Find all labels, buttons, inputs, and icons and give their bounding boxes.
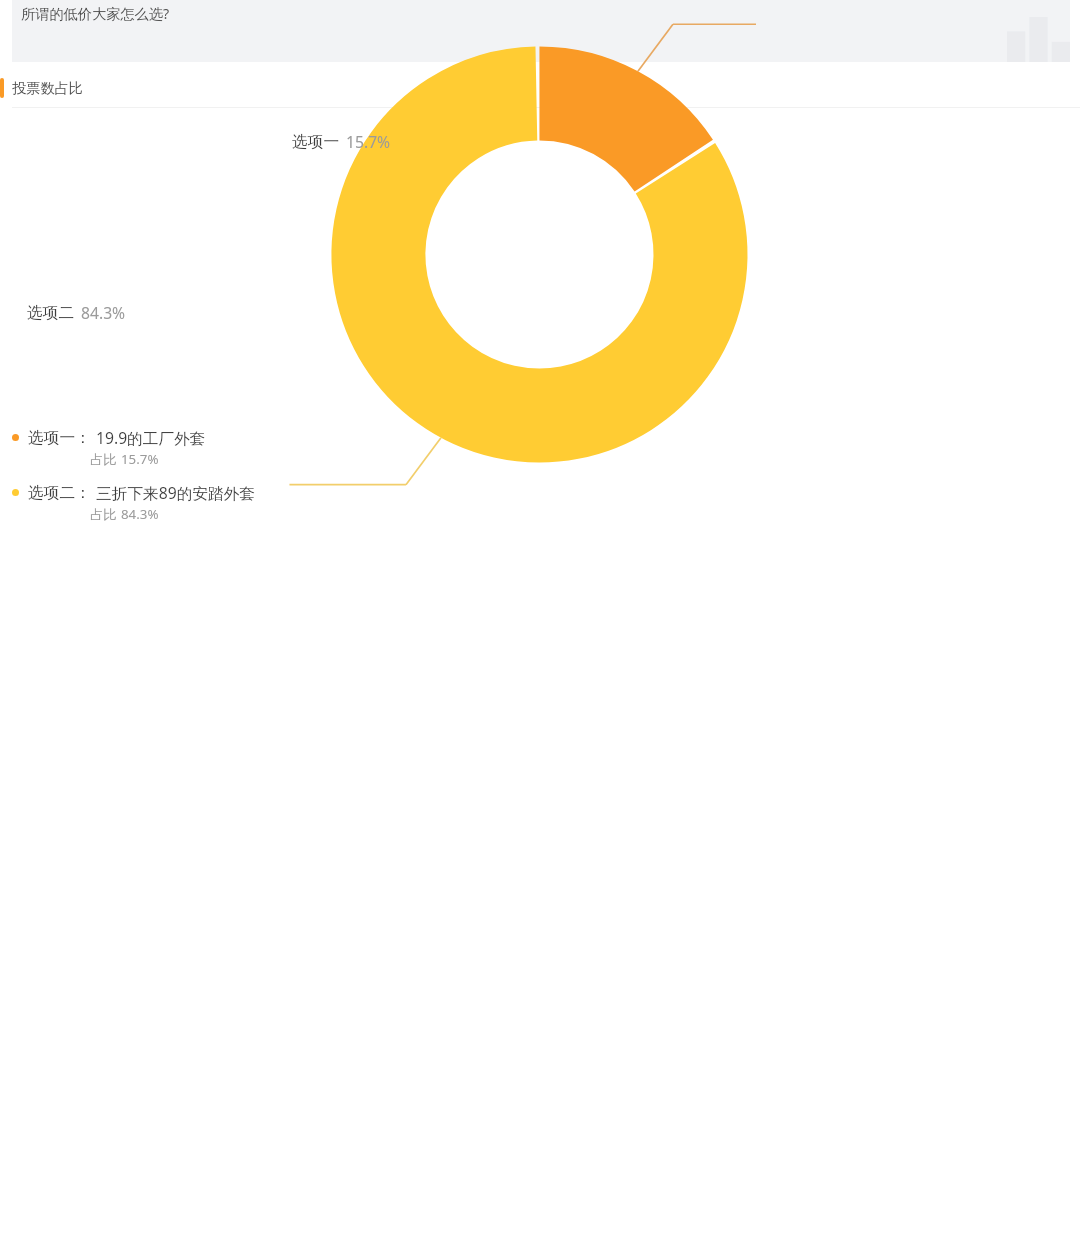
staticText: 15.7% <box>121 450 159 468</box>
staticText: 15.7% <box>346 131 391 152</box>
button[interactable]: 所谓的低价大家怎么选? <box>12 0 1070 62</box>
button[interactable]: 选项一： <box>0 427 1080 468</box>
button[interactable]: 投票数占比 <box>0 78 1080 98</box>
button[interactable]: 选项二： <box>0 482 1080 523</box>
staticText: 占比 <box>90 450 121 468</box>
staticText: 选项一 <box>292 132 340 152</box>
staticText: 选项二 <box>27 303 75 323</box>
staticText: 投票数占比 <box>12 79 83 97</box>
staticText: 19.9的工厂外套 <box>96 427 206 448</box>
staticText: 占比 <box>90 505 121 523</box>
staticText: 84.3% <box>121 505 159 523</box>
staticText: 选项二： <box>28 483 91 503</box>
staticText: 所谓的低价大家怎么选? <box>21 4 170 23</box>
staticText: 84.3% <box>81 302 126 323</box>
staticText: 选项一： <box>28 428 91 448</box>
staticText: 三折下来89的安踏外套 <box>96 482 256 503</box>
other: 投票数占比环形图 <box>0 108 1080 420</box>
